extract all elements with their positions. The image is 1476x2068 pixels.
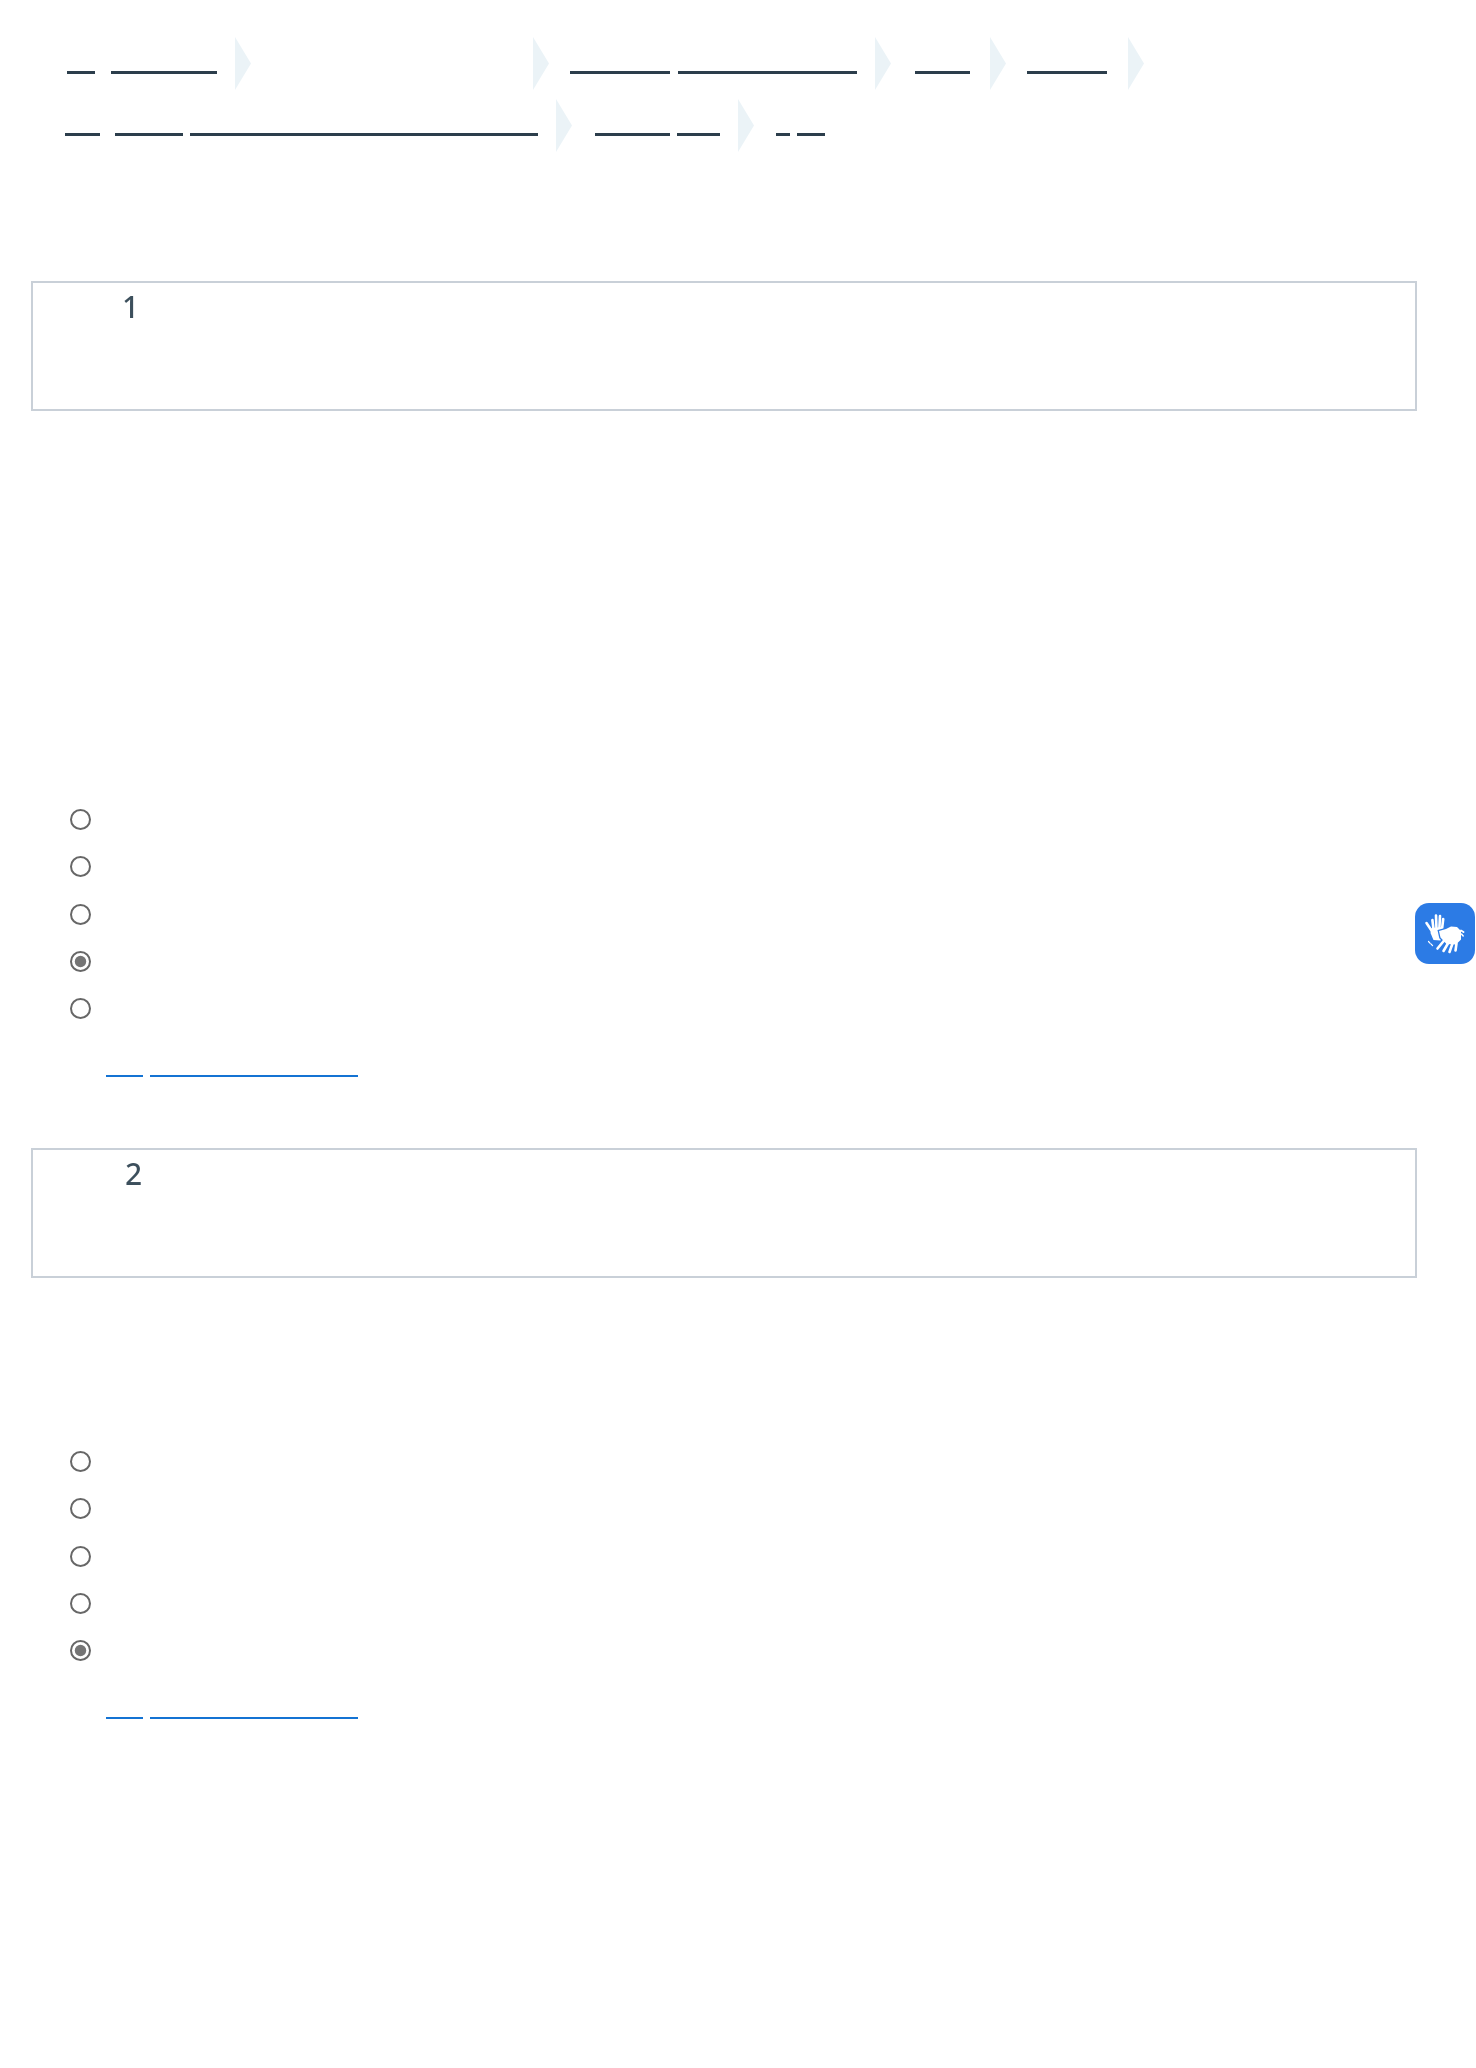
button[interactable]: Question set: [776, 117, 825, 151]
button[interactable]: Question 2 option 4: [58, 1585, 102, 1621]
button[interactable]: Home: [67, 55, 217, 89]
button[interactable]: Question 2 option 1: [58, 1443, 102, 1479]
button[interactable]: Question 1 option 5: [58, 990, 102, 1026]
button[interactable]: Show answer: [106, 1075, 358, 1077]
button[interactable]: Section: [570, 55, 857, 89]
button[interactable]: Question 1 option 4: [58, 943, 102, 979]
button[interactable]: Question 1 option 3: [58, 896, 102, 932]
button[interactable]: Accessibility sign language: [1415, 903, 1475, 964]
button[interactable]: Question 2 option 2: [58, 1490, 102, 1526]
button[interactable]: Question 1 option 1: [58, 801, 102, 837]
staticText: 2: [125, 1153, 143, 1194]
staticText: 1: [122, 286, 140, 327]
button[interactable]: Chapter: [915, 55, 970, 89]
button[interactable]: Exercise: [595, 117, 720, 151]
button[interactable]: Question 2 option 5: [58, 1632, 102, 1668]
button[interactable]: Subtopic: [65, 117, 183, 151]
button[interactable]: Question 2 option 3: [58, 1538, 102, 1574]
button[interactable]: Show answer: [106, 1717, 358, 1719]
button[interactable]: 1: [31, 281, 1417, 411]
button[interactable]: Topic: [1027, 55, 1107, 89]
button[interactable]: Question 1 option 2: [58, 848, 102, 884]
button[interactable]: 2: [31, 1148, 1417, 1278]
